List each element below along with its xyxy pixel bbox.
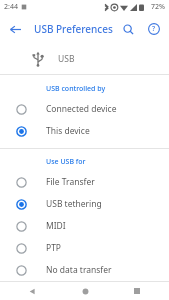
button[interactable]: File Transfer (0, 171, 169, 193)
button[interactable]: Help (141, 16, 167, 42)
staticText: 72% (151, 2, 165, 12)
staticText: ? (152, 24, 156, 34)
button[interactable]: No data transfer (0, 259, 169, 281)
button[interactable]: PTP (0, 237, 169, 259)
staticText: USB (58, 53, 75, 65)
button[interactable]: Home (65, 282, 105, 300)
staticText: PTP (46, 242, 62, 254)
button[interactable]: Recent apps (117, 282, 157, 300)
button[interactable]: Search (115, 16, 141, 42)
staticText: USB tethering (46, 198, 102, 210)
button[interactable]: Back (12, 282, 52, 300)
button[interactable]: Connected device (0, 98, 169, 120)
button[interactable]: Back (0, 14, 30, 44)
staticText: USB controlled by (46, 84, 106, 94)
staticText: USB Preferences (34, 22, 113, 36)
staticText: No data transfer (46, 264, 112, 276)
staticText: Use USB for (46, 157, 86, 167)
staticText: Connected device (46, 103, 117, 115)
button[interactable]: MIDI (0, 215, 169, 237)
staticText: 2:44 (4, 2, 18, 12)
button[interactable]: USB tethering (0, 193, 169, 215)
staticText: File Transfer (46, 176, 95, 188)
staticText: This device (46, 125, 90, 137)
staticText: MIDI (46, 220, 66, 232)
button[interactable]: This device (0, 120, 169, 142)
